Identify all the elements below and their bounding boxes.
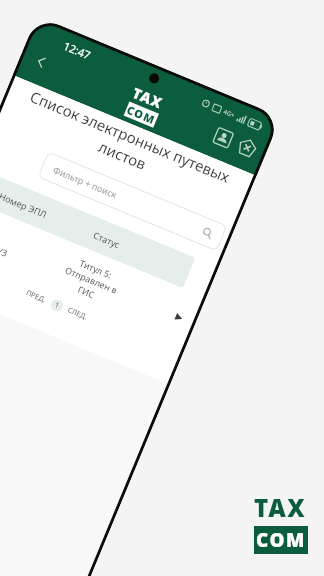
staticText: COM [256, 527, 306, 553]
button[interactable]: Back [26, 47, 55, 76]
staticText: 0823/3 [0, 237, 10, 259]
staticText: TAX [130, 83, 166, 112]
staticText: 12:47 [61, 38, 94, 63]
staticText: Фильтр + поиск [52, 163, 119, 200]
button[interactable]: СЛЕД. [66, 305, 89, 323]
button[interactable]: 1 [49, 297, 65, 313]
staticText: Список электронных путевых листов [0, 78, 252, 213]
staticText: Статус [92, 229, 122, 250]
staticText: TAX [254, 491, 307, 524]
button[interactable]: ПРЕД. [24, 288, 48, 305]
button[interactable]: Log out [235, 135, 260, 160]
staticText: 4G+ [222, 108, 236, 120]
button[interactable]: Фильтр + поиск [37, 151, 227, 251]
button[interactable]: 0823/3 [0, 199, 205, 348]
staticText: COM [125, 102, 158, 127]
staticText: Номер ЭПЛ [0, 190, 49, 220]
button[interactable]: Account [211, 125, 236, 150]
staticText: 1 [53, 300, 61, 311]
staticText: Титул 5: Отправлен в ГИС [58, 252, 124, 309]
